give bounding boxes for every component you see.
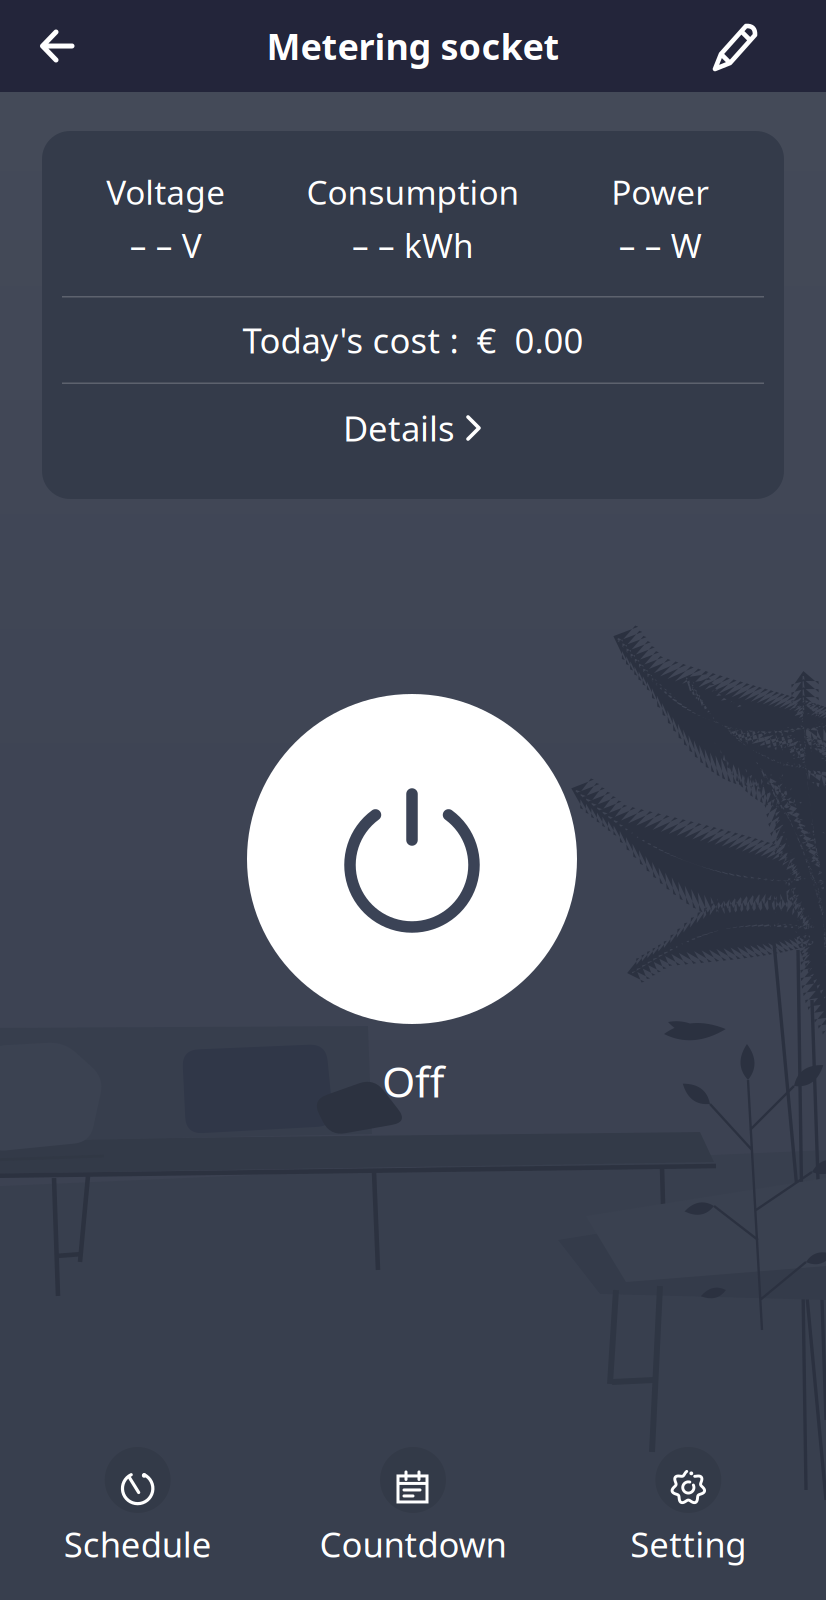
staticText: Schedule	[64, 1521, 212, 1567]
staticText: Details	[343, 405, 455, 451]
button[interactable]: Countdown	[275, 1447, 551, 1567]
staticText: – – V	[130, 223, 202, 267]
button[interactable]: Schedule	[0, 1447, 275, 1567]
button[interactable]: Details	[42, 384, 784, 499]
staticText: – – kWh	[352, 223, 474, 267]
button[interactable]: Edit	[648, 0, 826, 92]
button[interactable]: Setting	[551, 1447, 826, 1567]
staticText: Power	[611, 170, 709, 214]
staticText: Off	[382, 1053, 444, 1109]
button[interactable]: Back	[0, 0, 115, 92]
staticText: Countdown	[319, 1521, 506, 1567]
staticText: Setting	[630, 1521, 746, 1567]
staticText: – – W	[619, 223, 702, 267]
staticText: Voltage	[106, 170, 225, 214]
staticText: Today's cost : € 0.00	[242, 317, 583, 363]
button[interactable]: Power	[247, 694, 577, 1024]
staticText: Metering socket	[266, 22, 559, 70]
staticText: Consumption	[306, 170, 519, 214]
